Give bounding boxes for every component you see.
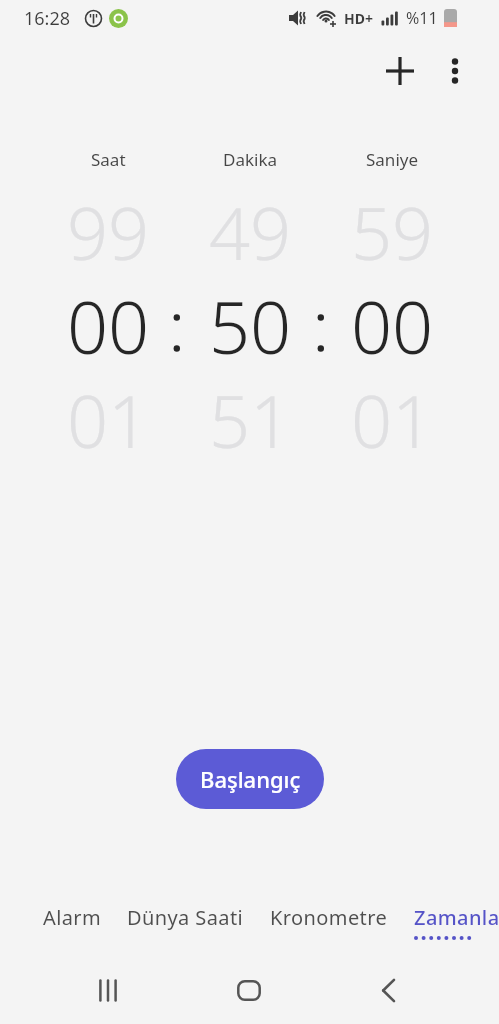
button[interactable]: Başlangıç <box>176 749 324 809</box>
staticText: %11 <box>406 7 438 29</box>
staticText: 49 <box>209 183 292 281</box>
staticText: Dakika <box>223 148 278 171</box>
button[interactable]: Dünya Saati <box>127 904 244 931</box>
staticText: 99 <box>67 183 150 281</box>
staticText: Saat <box>91 148 126 171</box>
button[interactable] <box>225 966 273 1014</box>
staticText: Saniye <box>366 148 419 171</box>
staticText: 51 <box>209 371 292 469</box>
staticText: 01 <box>351 371 434 469</box>
button[interactable]: Kronometre <box>270 904 388 931</box>
button[interactable] <box>364 966 412 1014</box>
staticText: Kronometre <box>270 904 388 931</box>
staticText: 16:28 <box>24 6 71 31</box>
button[interactable] <box>376 47 424 95</box>
staticText: 01 <box>67 371 150 469</box>
staticText: 59 <box>351 183 434 281</box>
staticText: Başlangıç <box>200 764 301 794</box>
button[interactable]: Zamanlayıcı <box>414 904 499 941</box>
button[interactable] <box>431 47 479 95</box>
staticText: 50 <box>209 277 292 375</box>
button[interactable] <box>84 966 132 1014</box>
staticText: Dünya Saati <box>127 904 244 931</box>
staticText: Zamanlayıcı <box>414 904 499 931</box>
staticText: Alarm <box>43 904 102 931</box>
button[interactable]: Alarm <box>43 904 102 931</box>
staticText: HD+ <box>344 9 373 28</box>
staticText: 00 <box>351 277 434 375</box>
staticText: 00 <box>67 277 150 375</box>
